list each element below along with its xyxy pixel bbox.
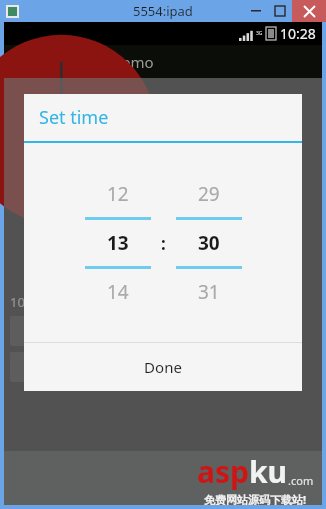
staticText: 5554:ipad [133, 2, 193, 20]
button[interactable]: Close [292, 0, 326, 22]
button[interactable]: 14 [85, 269, 151, 315]
staticText: 10:28 [10, 293, 44, 311]
button[interactable]: 13 [85, 220, 151, 266]
staticText: Ex25ClockDemo [40, 52, 154, 72]
staticText: ku [249, 451, 288, 492]
button[interactable]: 29 [176, 171, 242, 217]
staticText: .com [288, 473, 314, 488]
staticText: 12 [107, 181, 129, 207]
staticText: 13 [107, 230, 129, 256]
button[interactable] [10, 316, 50, 346]
staticText: asp [197, 451, 249, 492]
button[interactable]: 31 [176, 269, 242, 315]
button[interactable]: 12 [85, 171, 151, 217]
staticText: 29 [198, 181, 220, 207]
button[interactable]: Maximize [268, 0, 292, 22]
staticText: 3G [256, 30, 263, 37]
staticText: 31 [198, 279, 220, 305]
staticText: Done [144, 357, 182, 377]
staticText: 30 [198, 230, 220, 256]
button[interactable]: Done [24, 343, 302, 391]
button[interactable] [10, 352, 50, 382]
staticText: 14 [107, 279, 129, 305]
button[interactable]: Minimize [244, 0, 268, 22]
staticText: 免费网站源码下载站! [204, 492, 307, 505]
staticText: Set time [39, 105, 109, 130]
staticText: 10:28 [280, 24, 316, 43]
button[interactable]: 30 [176, 220, 242, 266]
staticText: : [161, 232, 166, 255]
